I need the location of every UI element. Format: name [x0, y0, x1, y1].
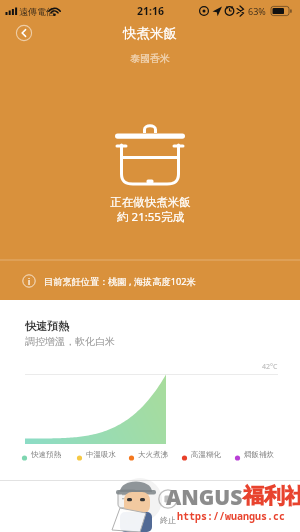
staticText: 快速預熱 — [31, 450, 61, 459]
button[interactable]: Back — [16, 25, 32, 41]
staticText: ANGUS — [166, 483, 243, 512]
staticText: 高溫糊化 — [191, 450, 221, 459]
staticText: 約 21:55完成 — [117, 209, 184, 225]
staticText: https://wuangus.cc — [177, 509, 285, 523]
staticText: 遠傳電信 — [19, 6, 55, 17]
button[interactable]: 目前烹飪位置：桃園 , 海拔高度102米 — [0, 266, 300, 296]
staticText: 目前烹飪位置：桃園 , 海拔高度102米 — [44, 275, 196, 287]
staticText: 63% — [248, 5, 266, 17]
staticText: 福利社 — [243, 483, 300, 509]
button[interactable]: 大火煮沸 — [127, 450, 168, 466]
button[interactable]: 燜飯補炊 — [233, 450, 274, 466]
staticText: 泰國香米 — [130, 52, 170, 65]
button[interactable]: 中溫吸水 — [75, 450, 116, 466]
button[interactable] — [150, 486, 186, 528]
staticText: 快速預熱 — [25, 319, 69, 333]
staticText: 燜飯補炊 — [244, 450, 274, 459]
staticText: 終止 — [160, 515, 176, 525]
button[interactable] — [110, 486, 146, 528]
button[interactable]: 快速預熱 — [20, 450, 61, 466]
staticText: 快煮米飯 — [123, 25, 177, 42]
staticText: 中溫吸水 — [86, 450, 116, 459]
staticText: 調控增溫，軟化白米 — [25, 335, 115, 348]
button[interactable]: 高溫糊化 — [180, 450, 221, 466]
staticText: 大火煮沸 — [138, 450, 168, 459]
staticText: 正在做快煮米飯 — [110, 195, 191, 209]
staticText: 21:16 — [137, 4, 164, 18]
staticText: 42°C — [262, 362, 278, 371]
staticText: i — [28, 276, 31, 287]
